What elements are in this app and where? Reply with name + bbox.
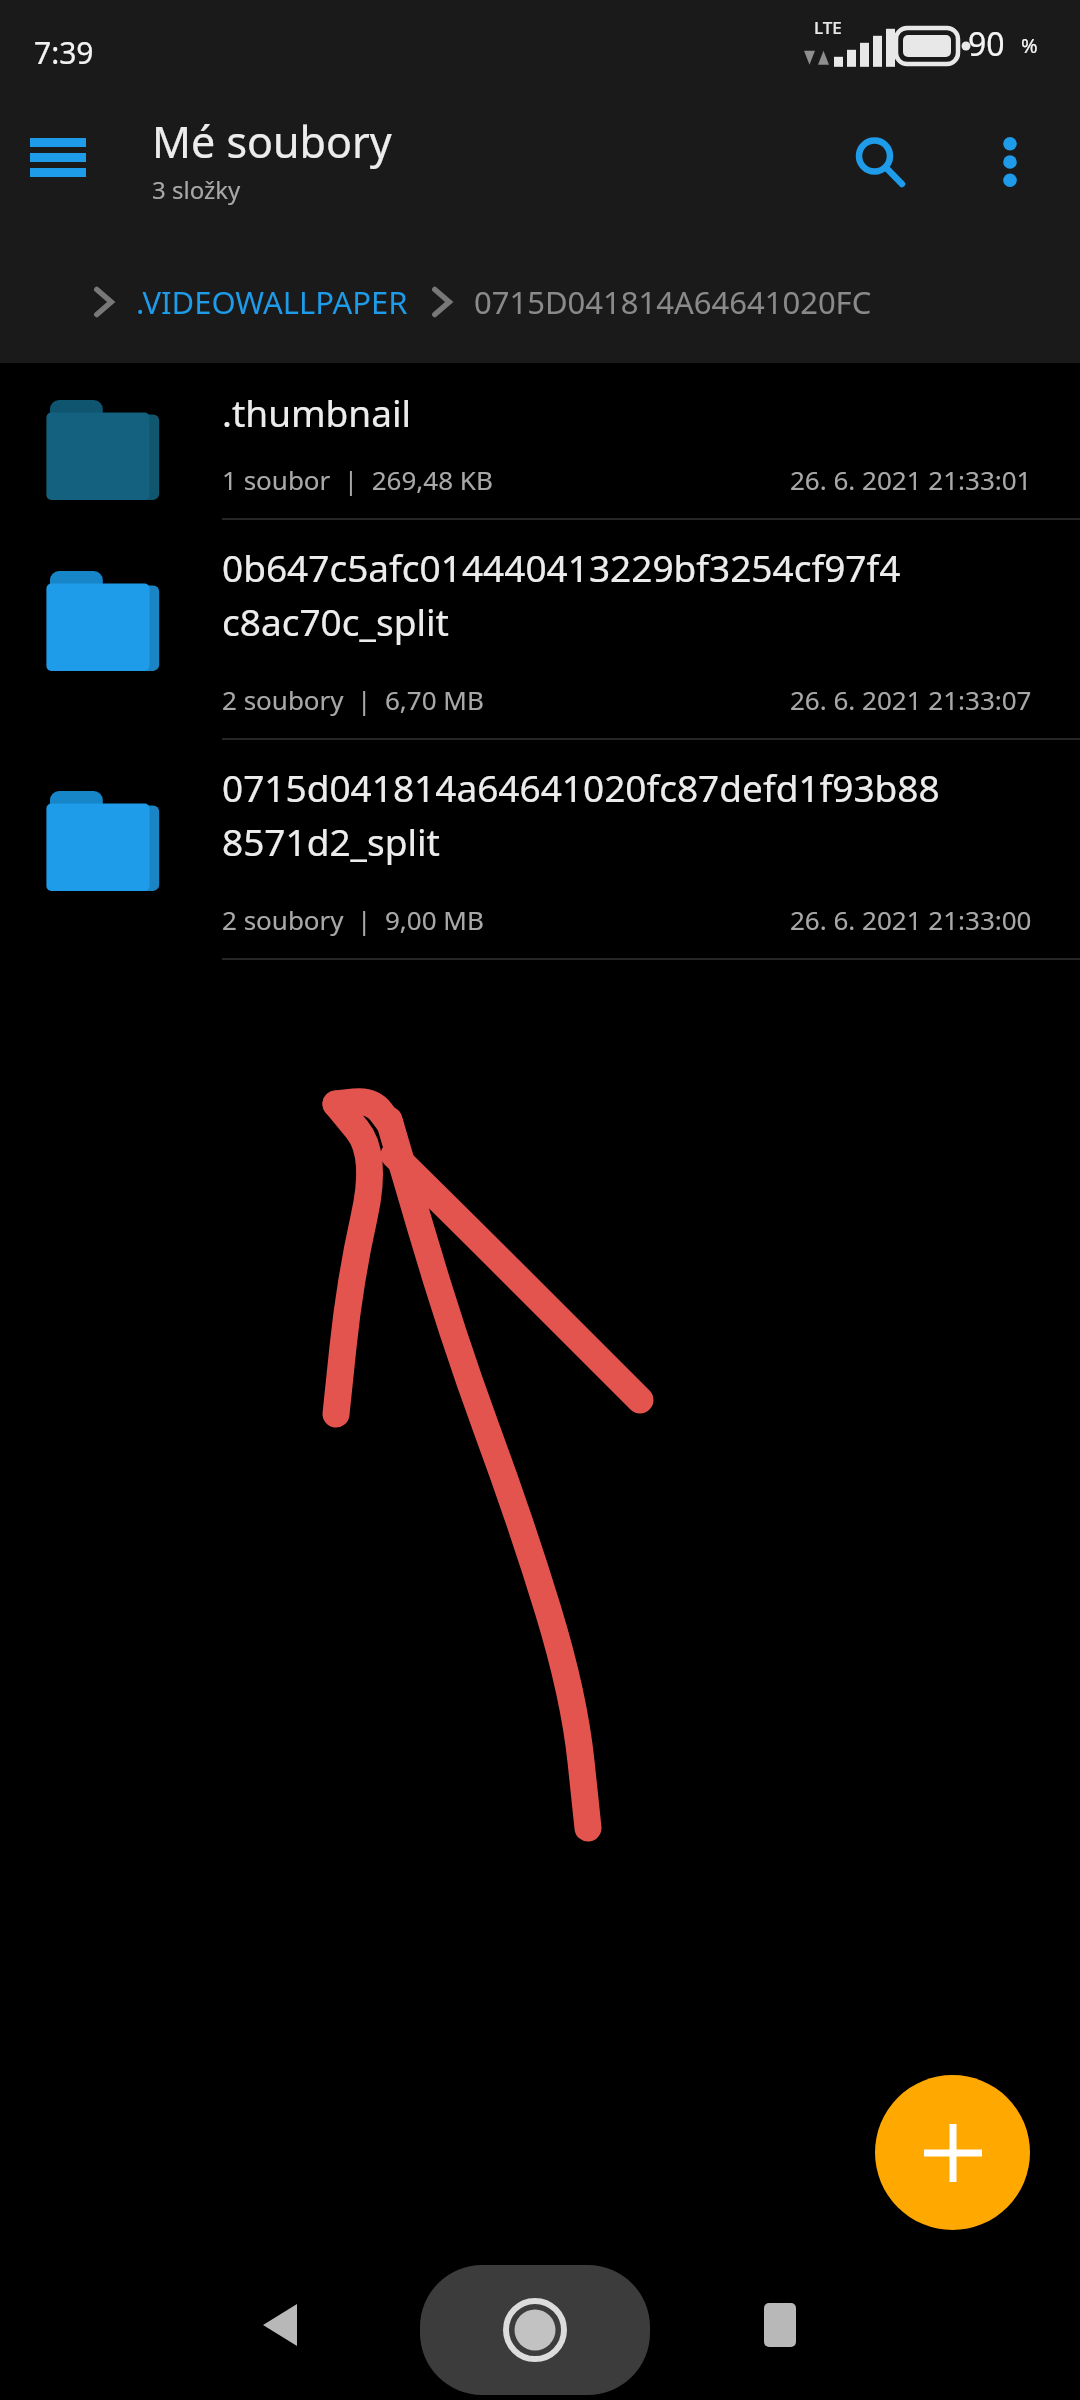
staticText: 26. 6. 2021 21:33:00 xyxy=(790,902,1032,937)
staticText: .VIDEOWALLPAPER xyxy=(136,281,408,323)
staticText: 0715d041814a64641020fc87defd1f93b88 8571… xyxy=(222,762,940,867)
staticText: 26. 6. 2021 21:33:01 xyxy=(790,462,1032,497)
button[interactable]: 0b647c5afc014440413229bf3254cf97f4 c8ac7… xyxy=(0,520,1080,738)
staticText: .thumbnail xyxy=(222,387,412,437)
button[interactable]: Search xyxy=(838,120,922,204)
staticText: 90 xyxy=(968,22,1005,66)
staticText: 3 složky xyxy=(152,173,241,206)
staticText: LTE xyxy=(814,16,842,39)
staticText: 7:39 xyxy=(34,32,94,73)
staticText: 0715D041814A64641020FC xyxy=(474,281,872,323)
staticText: 26. 6. 2021 21:33:07 xyxy=(790,682,1032,717)
button[interactable]: Home xyxy=(420,2265,650,2395)
button[interactable]: Recent apps xyxy=(740,2285,820,2365)
button[interactable]: More options xyxy=(968,120,1052,204)
staticText: 0b647c5afc014440413229bf3254cf97f4 c8ac7… xyxy=(222,542,901,647)
button[interactable]: .VIDEOWALLPAPER xyxy=(136,281,408,323)
button[interactable]: Open navigation drawer xyxy=(22,122,94,194)
staticText: 2 soubory | 9,00 MB xyxy=(222,902,484,937)
button[interactable]: .thumbnail xyxy=(0,363,1080,518)
button[interactable]: Add xyxy=(875,2075,1030,2230)
staticText: Mé soubory xyxy=(152,112,392,171)
button[interactable]: 0715D041814A64641020FC xyxy=(474,281,872,323)
staticText: % xyxy=(1021,32,1038,59)
staticText: 2 soubory | 6,70 MB xyxy=(222,682,484,717)
button[interactable]: Back xyxy=(240,2285,320,2365)
button[interactable]: 0715d041814a64641020fc87defd1f93b88 8571… xyxy=(0,740,1080,958)
staticText: 1 soubor | 269,48 KB xyxy=(222,462,493,497)
